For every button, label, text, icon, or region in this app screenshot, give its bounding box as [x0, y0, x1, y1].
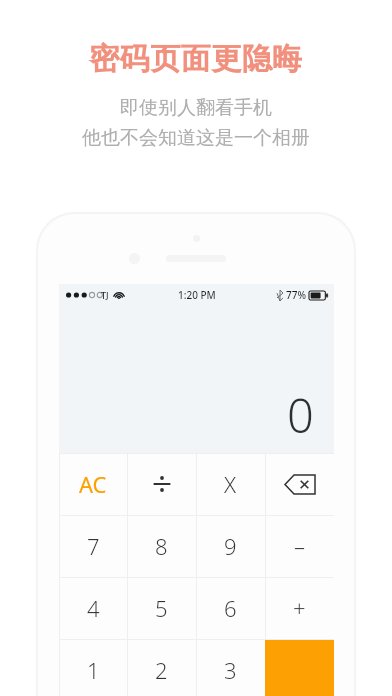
button[interactable]: 2: [127, 639, 196, 696]
staticText: AC: [79, 469, 107, 499]
staticText: 密码页面更隐晦: [89, 40, 303, 78]
button[interactable]: 6: [196, 577, 265, 639]
staticText: 5: [155, 593, 168, 623]
staticText: 77%: [286, 288, 306, 302]
staticText: 即使别人翻看手机: [120, 96, 272, 120]
staticText: X: [224, 469, 237, 499]
staticText: 6: [224, 593, 237, 623]
staticText: 2: [155, 655, 168, 685]
button[interactable]: X: [196, 453, 265, 515]
button[interactable]: 4: [59, 577, 127, 639]
button[interactable]: 7: [59, 515, 127, 577]
staticText: –: [294, 531, 306, 561]
staticText: 9: [224, 531, 237, 561]
button[interactable]: 5: [127, 577, 196, 639]
button[interactable]: AC: [59, 453, 127, 515]
staticText: 他也不会知道这是一个相册: [82, 126, 310, 150]
button[interactable]: Backspace: [265, 453, 334, 515]
button[interactable]: +: [265, 577, 334, 639]
button[interactable]: 8: [127, 515, 196, 577]
button[interactable]: 9: [196, 515, 265, 577]
button[interactable]: –: [265, 515, 334, 577]
button[interactable]: 3: [196, 639, 265, 696]
button[interactable]: Divide: [127, 453, 196, 515]
staticText: 1: [87, 655, 100, 685]
staticText: 7: [87, 531, 100, 561]
staticText: 1:20 PM: [178, 288, 216, 302]
staticText: 0: [287, 383, 314, 447]
button[interactable]: 1: [59, 639, 127, 696]
button[interactable]: Equals: [265, 639, 334, 696]
staticText: +: [293, 593, 306, 623]
staticText: 4: [87, 593, 100, 623]
staticText: TJ: [101, 289, 109, 301]
staticText: 3: [224, 655, 237, 685]
staticText: 8: [155, 531, 168, 561]
